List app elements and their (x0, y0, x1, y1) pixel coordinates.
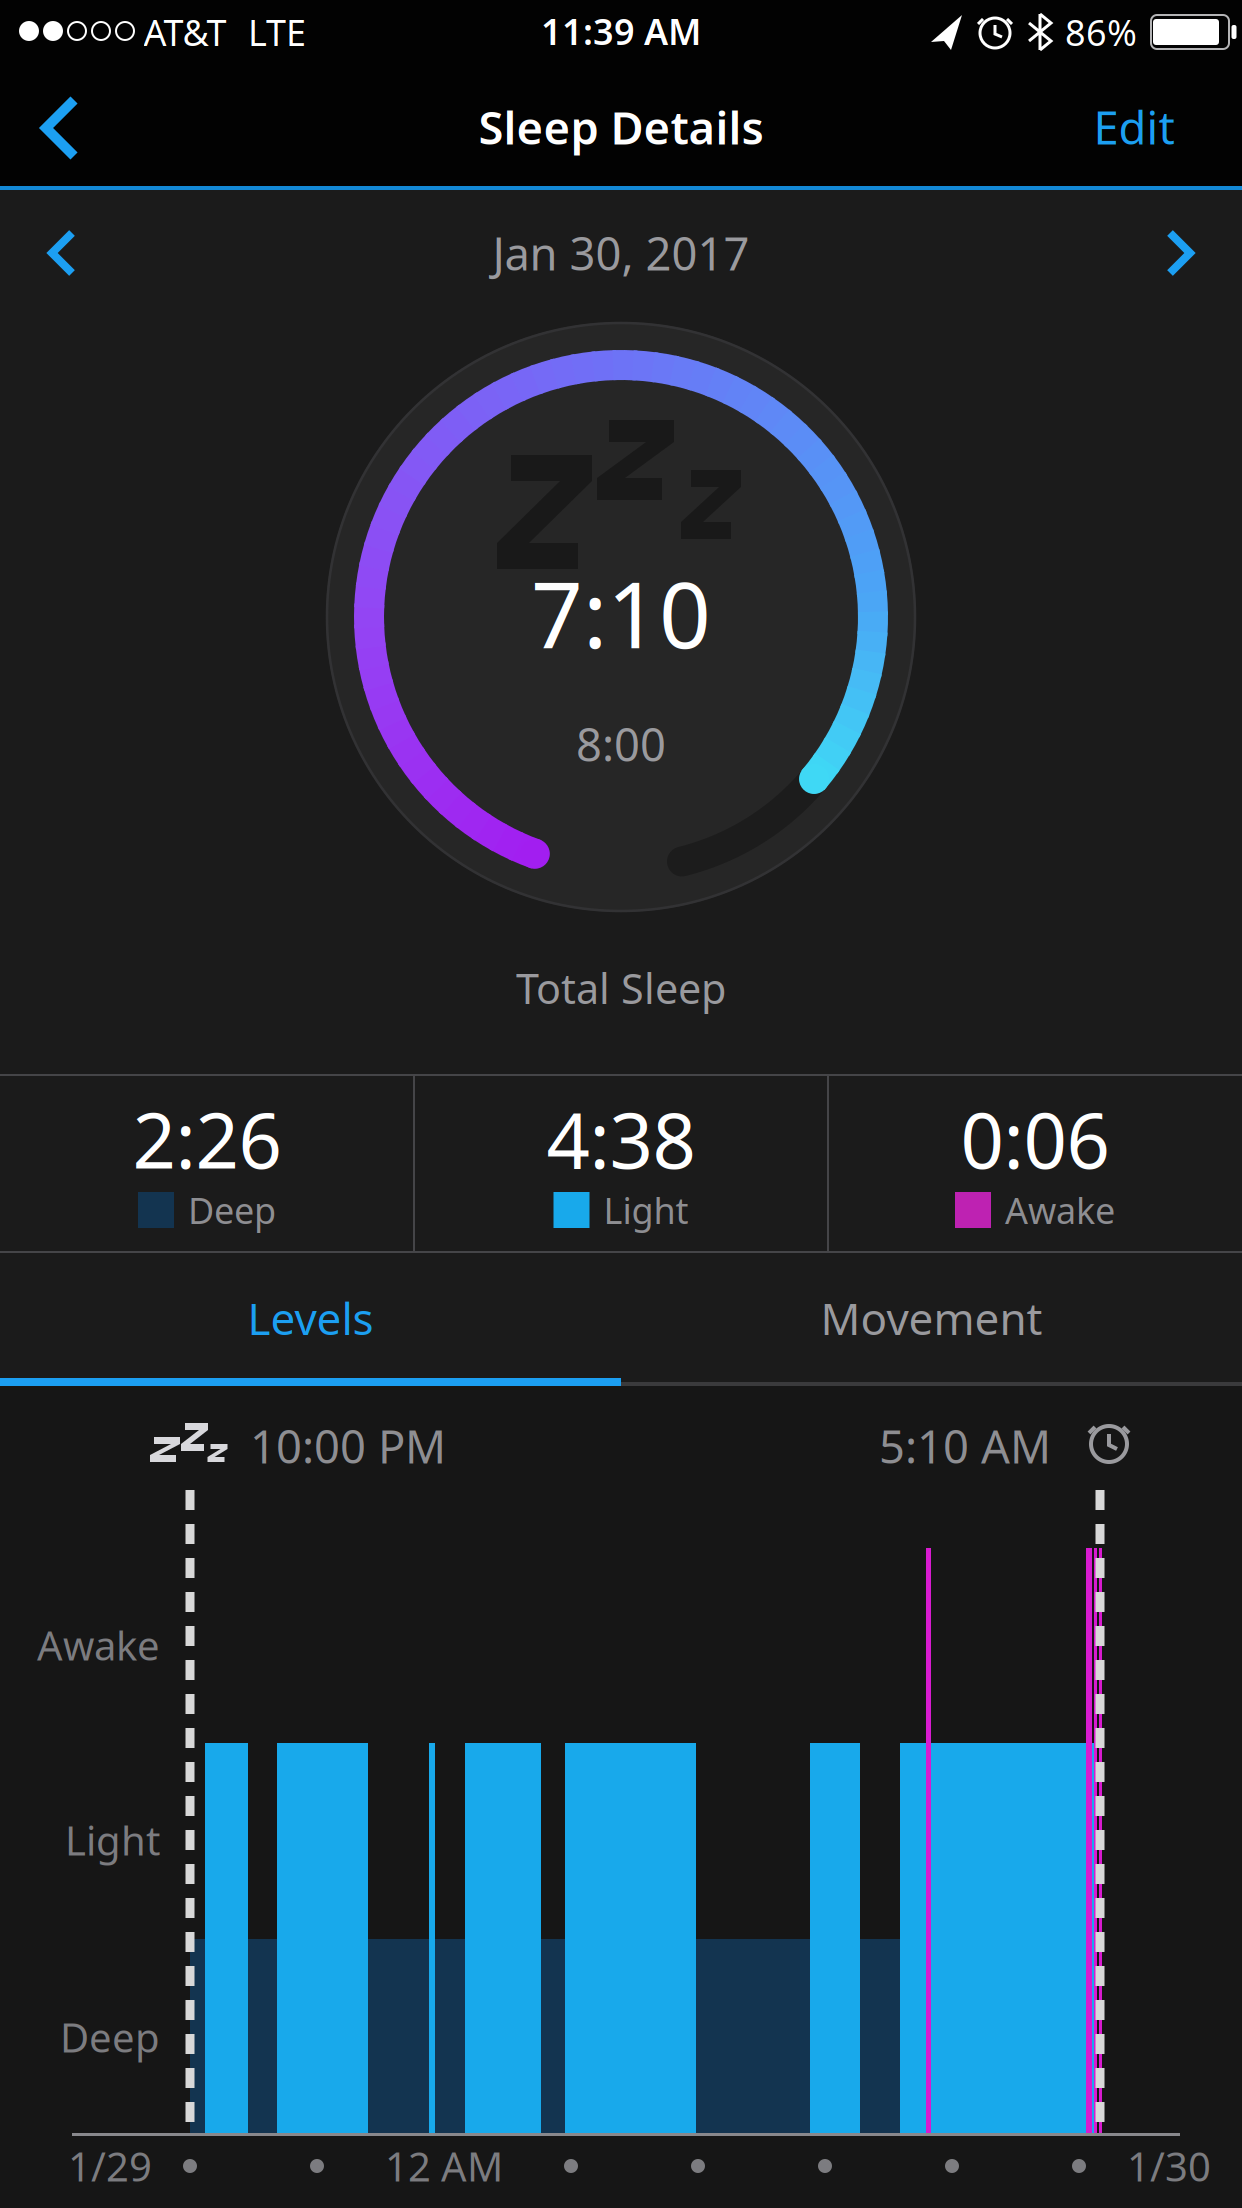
staticText: Deep (60, 2010, 160, 2063)
staticText: Total Sleep (516, 961, 726, 1015)
button[interactable] (46, 229, 78, 277)
staticText: 5:10 AM (879, 1416, 1051, 1476)
staticText: 8:00 (576, 714, 666, 774)
staticText: Movement (820, 1289, 1042, 1347)
staticText: 11:39 AM (541, 7, 701, 55)
staticText: 4:38 (546, 1088, 695, 1189)
staticText: 12 AM (385, 2139, 503, 2192)
staticText: 2:26 (132, 1088, 281, 1189)
button[interactable] (40, 96, 80, 160)
staticText: 1/29 (68, 2139, 152, 2192)
staticText: AT&T (143, 8, 226, 56)
button[interactable]: Edit (1074, 95, 1194, 159)
staticText: Levels (247, 1289, 373, 1347)
staticText: Light (65, 1813, 160, 1866)
button[interactable]: Movement (621, 1258, 1242, 1378)
staticText: Awake (37, 1618, 160, 1671)
staticText: Sleep Details (478, 97, 763, 157)
staticText: 10:00 PM (250, 1416, 446, 1476)
staticText: 0:06 (960, 1088, 1109, 1189)
staticText: Deep (188, 1186, 276, 1234)
staticText: Jan 30, 2017 (492, 223, 749, 283)
staticText: LTE (248, 8, 306, 56)
button[interactable] (1164, 229, 1196, 277)
staticText: 7:10 (531, 553, 711, 673)
staticText: Edit (1093, 97, 1174, 157)
staticText: 1/30 (1127, 2139, 1211, 2192)
staticText: Awake (1005, 1186, 1115, 1234)
button[interactable]: Levels (0, 1258, 621, 1378)
staticText: Light (603, 1186, 688, 1234)
staticText: 86% (1065, 8, 1137, 56)
